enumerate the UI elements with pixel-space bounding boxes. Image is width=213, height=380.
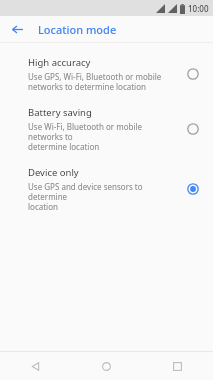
button[interactable]: Device only — [0, 159, 213, 219]
button[interactable]: Not selected — [183, 119, 203, 139]
button[interactable]: Selected — [183, 179, 203, 199]
button[interactable]: Recents — [142, 352, 213, 380]
button[interactable]: High accuracy — [0, 49, 213, 99]
staticText: High accuracy — [28, 56, 91, 69]
button[interactable]: Not selected — [183, 64, 203, 84]
staticText: 10:00 — [188, 3, 209, 14]
staticText: Battery saving — [28, 106, 92, 119]
staticText: Location mode — [38, 22, 117, 37]
button[interactable]: Battery saving — [0, 99, 213, 159]
staticText: Use GPS, Wi-Fi, Bluetooth or mobile netw… — [28, 71, 162, 92]
button[interactable]: Back — [6, 18, 28, 40]
staticText: Device only — [28, 166, 79, 179]
button[interactable]: Back — [0, 352, 71, 380]
button[interactable]: Home — [71, 352, 142, 380]
staticText: Use Wi-Fi, Bluetooth or mobile networks … — [28, 121, 177, 152]
staticText: Use GPS and device sensors to determine … — [28, 181, 177, 212]
